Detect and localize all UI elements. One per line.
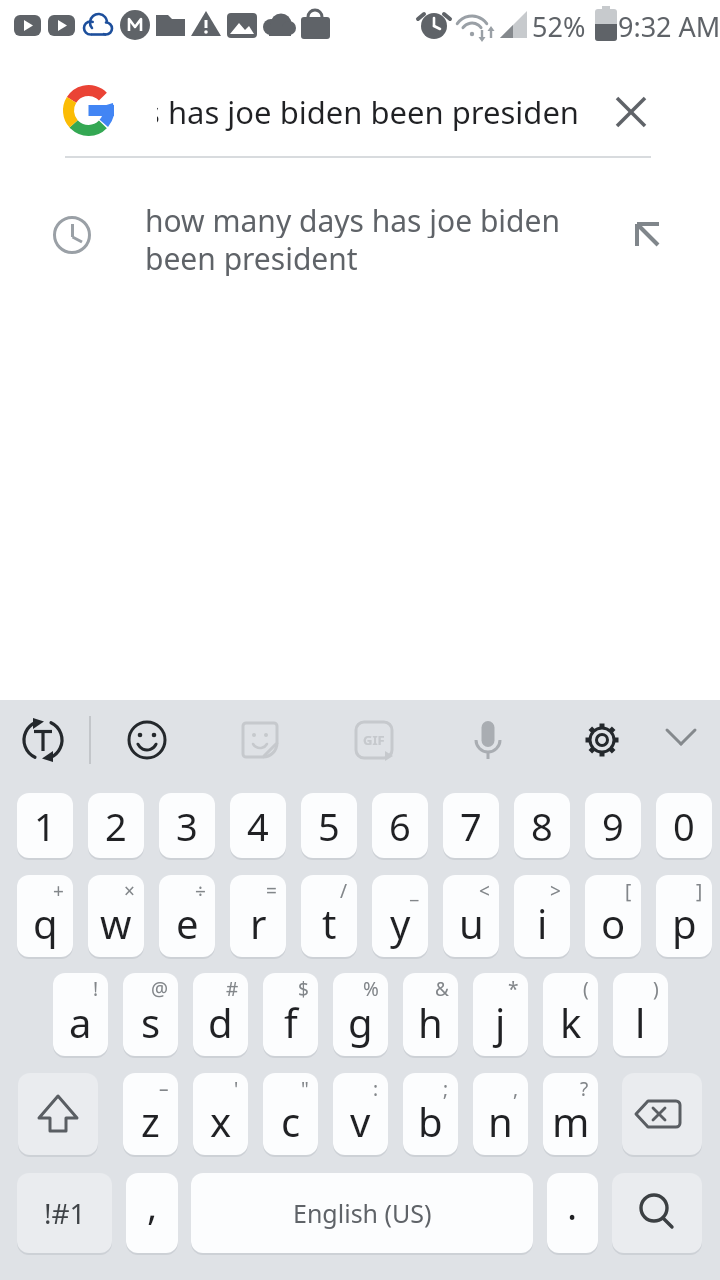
button[interactable]: q <box>17 875 73 957</box>
staticText: m <box>552 1094 590 1148</box>
button[interactable]: l <box>613 973 668 1056</box>
staticText: d <box>208 995 233 1049</box>
staticText: , <box>147 1179 158 1231</box>
staticText: _ <box>410 878 419 904</box>
button[interactable]: u <box>443 875 499 957</box>
button[interactable]: 2 <box>88 793 144 858</box>
staticText: b <box>418 1094 443 1148</box>
button[interactable] <box>612 1173 702 1253</box>
button[interactable]: v <box>333 1073 388 1155</box>
staticText: r <box>250 896 267 950</box>
staticText: ! <box>93 976 99 1002</box>
staticText: s has joe biden been presiden <box>157 91 580 133</box>
button[interactable]: 8 <box>514 793 570 858</box>
button[interactable]: n <box>473 1073 528 1155</box>
button[interactable]: GIF <box>347 713 401 767</box>
staticText: 4 <box>247 800 269 852</box>
staticText: 3 <box>176 800 198 852</box>
button[interactable] <box>656 713 706 763</box>
button[interactable]: w <box>88 875 144 957</box>
button[interactable]: h <box>403 973 458 1056</box>
button[interactable]: p <box>656 875 712 957</box>
staticText: i <box>537 896 548 950</box>
button[interactable]: . <box>547 1173 598 1253</box>
button[interactable]: 4 <box>230 793 286 858</box>
staticText: # <box>226 976 239 1002</box>
button[interactable]: 3 <box>159 793 215 858</box>
button[interactable]: e <box>159 875 215 957</box>
staticText: : <box>373 1076 379 1102</box>
button[interactable] <box>0 190 720 285</box>
button[interactable]: o <box>585 875 641 957</box>
staticText: w <box>100 896 132 950</box>
staticText: ] <box>696 878 703 904</box>
staticText: [ <box>625 878 632 904</box>
staticText: 1 <box>34 800 56 852</box>
button[interactable]: English (US) <box>191 1173 533 1253</box>
button[interactable]: r <box>230 875 286 957</box>
button[interactable]: 7 <box>443 793 499 858</box>
button[interactable]: x <box>193 1073 248 1155</box>
staticText: = <box>266 878 277 904</box>
button[interactable]: 0 <box>656 793 712 858</box>
staticText: ) <box>653 976 659 1002</box>
staticText: 0 <box>673 800 695 852</box>
staticText: English (US) <box>293 1196 432 1230</box>
staticText: GIF <box>363 731 385 749</box>
button[interactable]: a <box>53 973 108 1056</box>
button[interactable]: s <box>123 973 178 1056</box>
button[interactable]: f <box>263 973 318 1056</box>
staticText: 2 <box>105 800 127 852</box>
button[interactable]: z <box>123 1073 178 1155</box>
staticText: u <box>459 896 484 950</box>
staticText: 52% <box>532 8 586 42</box>
staticText: / <box>340 878 348 904</box>
button[interactable] <box>605 86 657 138</box>
staticText: + <box>53 878 64 904</box>
button[interactable]: !#1 <box>17 1173 112 1253</box>
staticText: s <box>141 995 161 1049</box>
button[interactable]: 5 <box>301 793 357 858</box>
staticText: $ <box>298 976 309 1002</box>
staticText: < <box>479 878 490 904</box>
staticText: ( <box>583 976 589 1002</box>
button[interactable]: t <box>301 875 357 957</box>
staticText: > <box>550 878 561 904</box>
button[interactable] <box>18 1073 98 1155</box>
staticText: how many days has joe biden <box>145 200 560 238</box>
button[interactable] <box>120 713 174 767</box>
staticText: z <box>141 1094 160 1148</box>
staticText: . <box>567 1179 578 1231</box>
staticText: & <box>435 976 449 1002</box>
staticText: c <box>281 1094 301 1148</box>
button[interactable]: d <box>193 973 248 1056</box>
button[interactable]: y <box>372 875 428 957</box>
button[interactable] <box>16 713 70 767</box>
button[interactable]: c <box>263 1073 318 1155</box>
button[interactable]: m <box>543 1073 598 1155</box>
button[interactable] <box>461 713 515 767</box>
button[interactable]: i <box>514 875 570 957</box>
button[interactable]: s has joe biden been presiden <box>157 90 597 134</box>
button[interactable] <box>575 713 629 767</box>
button[interactable]: b <box>403 1073 458 1155</box>
staticText: y <box>390 896 411 950</box>
staticText: !#1 <box>44 1194 86 1232</box>
button[interactable] <box>622 1073 702 1155</box>
staticText: f <box>284 995 298 1049</box>
button[interactable]: 9 <box>585 793 641 858</box>
button[interactable]: g <box>333 973 388 1056</box>
button[interactable] <box>233 713 287 767</box>
button[interactable]: 1 <box>17 793 73 858</box>
button[interactable]: 6 <box>372 793 428 858</box>
staticText: n <box>488 1094 513 1148</box>
staticText: x <box>210 1094 232 1148</box>
staticText: " <box>301 1076 309 1102</box>
button[interactable]: , <box>126 1173 178 1253</box>
button[interactable]: j <box>473 973 528 1056</box>
staticText: a <box>69 995 92 1049</box>
staticText: t <box>322 896 337 950</box>
staticText: * <box>508 976 519 1002</box>
staticText: v <box>350 1094 371 1148</box>
button[interactable]: k <box>543 973 598 1056</box>
